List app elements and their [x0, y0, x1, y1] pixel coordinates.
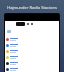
- button[interactable]: [5, 60, 59, 66]
- button[interactable]: [5, 42, 59, 48]
- button[interactable]: [5, 54, 59, 60]
- staticText: Hajmunder Radio Stacions: [7, 5, 57, 10]
- button[interactable]: [5, 36, 59, 42]
- button[interactable]: [5, 66, 59, 72]
- button[interactable]: [5, 48, 59, 54]
